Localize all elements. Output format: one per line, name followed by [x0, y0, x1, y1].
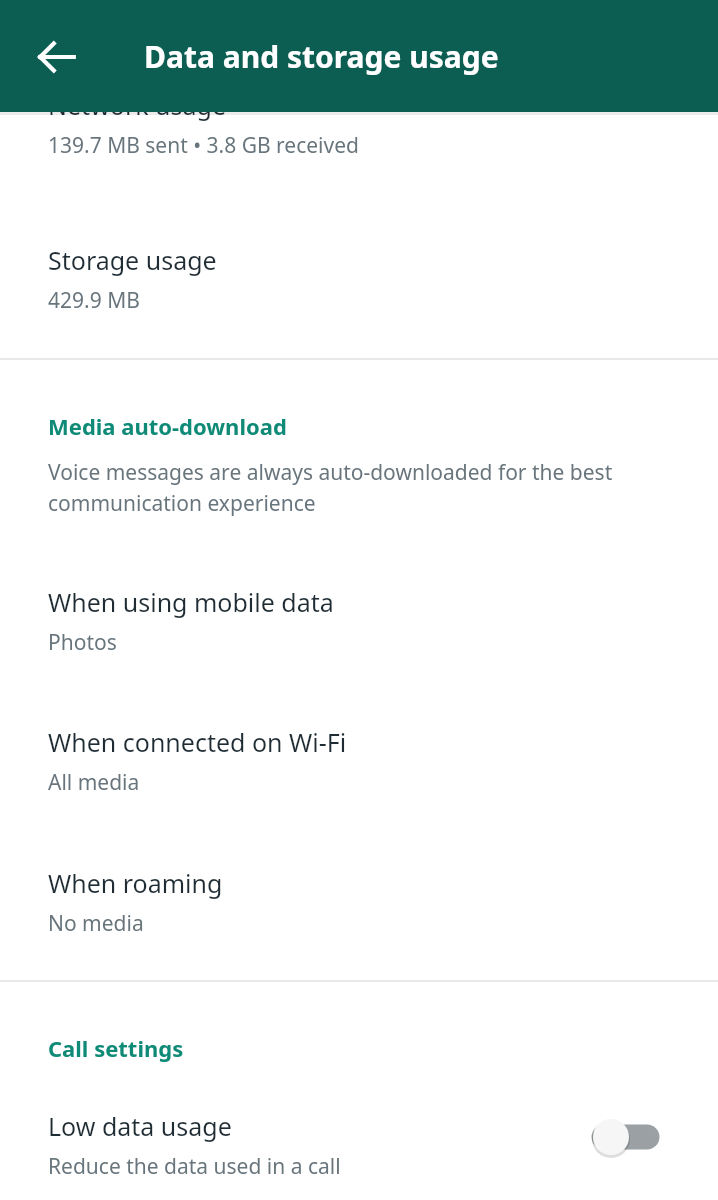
button[interactable]: Storage usage	[0, 230, 718, 350]
staticText: Storage usage	[48, 243, 217, 277]
staticText: When roaming	[48, 866, 223, 900]
staticText: Voice messages are always auto-downloade…	[48, 458, 668, 517]
staticText: Call settings	[48, 1033, 184, 1063]
staticText: Network usage	[48, 88, 227, 122]
staticText: 139.7 MB sent • 3.8 GB received	[48, 131, 359, 160]
button[interactable]: Low data usage	[0, 1096, 718, 1200]
staticText: 429.9 MB	[48, 286, 140, 315]
button[interactable]: When using mobile data	[0, 572, 718, 690]
button[interactable]: Network usage	[0, 88, 718, 176]
staticText: When connected on Wi-Fi	[48, 725, 347, 759]
staticText: Reduce the data used in a call	[48, 1152, 341, 1181]
staticText: Photos	[48, 628, 117, 657]
staticText: No media	[48, 909, 144, 938]
staticText: Data and storage usage	[144, 36, 499, 77]
staticText: Low data usage	[48, 1109, 232, 1143]
button[interactable]: Back	[22, 22, 92, 92]
staticText: All media	[48, 768, 140, 797]
button[interactable]: When roaming	[0, 853, 718, 970]
staticText: Media auto-download	[48, 411, 287, 441]
button[interactable]: When connected on Wi-Fi	[0, 712, 718, 830]
button[interactable]: Low data usage toggle	[580, 1107, 668, 1167]
staticText: When using mobile data	[48, 585, 334, 619]
